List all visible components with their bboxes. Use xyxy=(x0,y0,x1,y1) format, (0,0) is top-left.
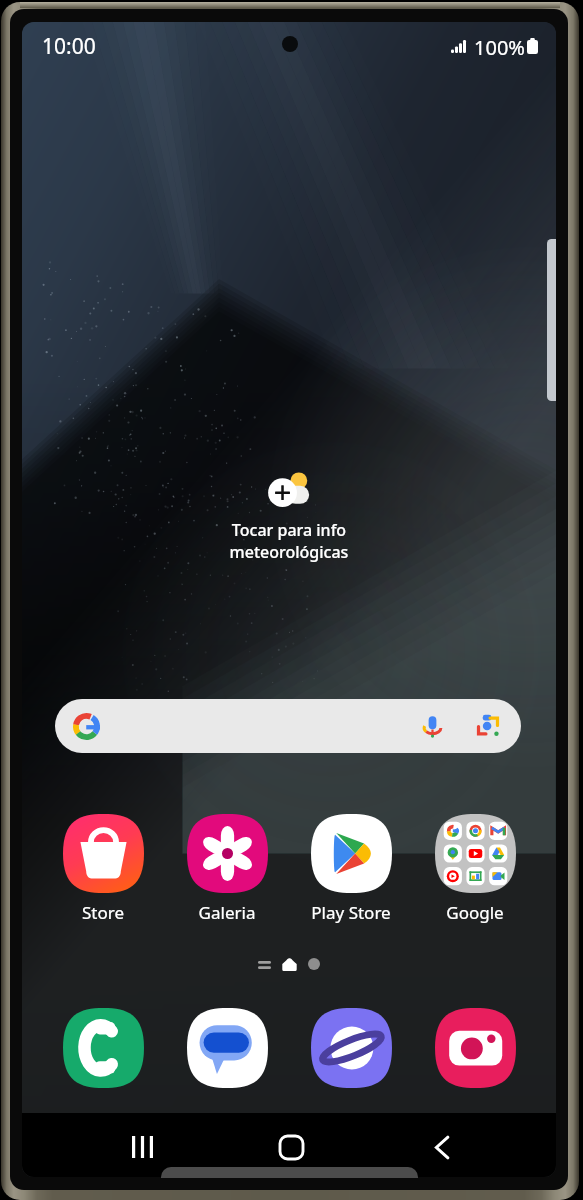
button[interactable]: Edge panel xyxy=(547,239,556,401)
button[interactable]: Google xyxy=(417,814,533,924)
button[interactable]: Recents xyxy=(113,1118,171,1176)
button[interactable]: Camera xyxy=(420,1008,530,1088)
staticText: Tocar para info meteorológicas xyxy=(154,519,424,563)
button[interactable]: Back xyxy=(413,1118,471,1176)
button[interactable]: Phone xyxy=(48,1008,158,1088)
staticText: 10:00 xyxy=(42,32,96,61)
button[interactable]: Galeria xyxy=(169,814,285,924)
button[interactable]: Messages xyxy=(172,1008,282,1088)
staticText: Play Store xyxy=(293,901,409,924)
button[interactable]: Home xyxy=(262,1118,320,1176)
staticText: Store xyxy=(45,901,161,924)
button[interactable]: Store xyxy=(45,814,161,924)
staticText: Galeria xyxy=(169,901,285,924)
button[interactable]: Play Store xyxy=(293,814,409,924)
button[interactable]: Internet xyxy=(296,1008,406,1088)
staticText: Google xyxy=(417,901,533,924)
staticText: 100% xyxy=(474,34,525,58)
button[interactable]: Tocar para info meteorológicas xyxy=(154,470,424,563)
button[interactable] xyxy=(55,699,521,753)
